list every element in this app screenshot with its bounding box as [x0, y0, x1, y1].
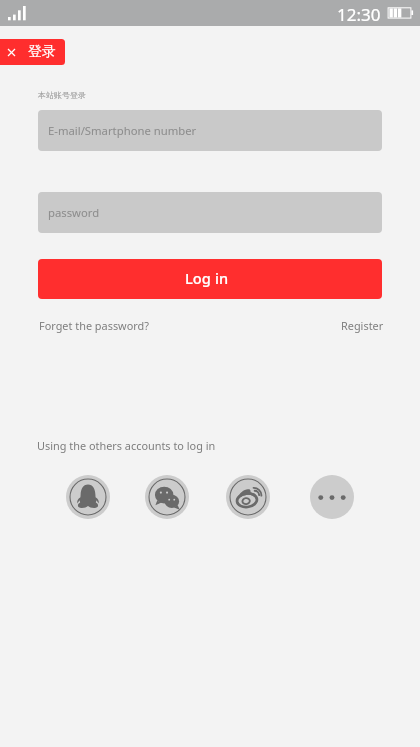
staticText: Log — [185, 268, 211, 288]
button[interactable]: E-mail/Smartphone number — [38, 110, 382, 151]
button[interactable]: WeChat login — [145, 475, 189, 519]
staticText: E-mail/Smartphone number — [48, 123, 197, 138]
button[interactable]: 登录 — [0, 39, 65, 65]
button[interactable]: Register — [341, 318, 384, 333]
button[interactable]: password — [38, 192, 382, 233]
staticText: 登录 — [28, 43, 56, 61]
staticText: 本站账号登录 — [38, 90, 86, 100]
button[interactable]: Weibo login — [226, 475, 270, 519]
staticText: Using the others accounts to log in — [37, 438, 216, 453]
button[interactable]: QQ login — [66, 475, 110, 519]
button[interactable]: Log — [38, 259, 382, 299]
button[interactable]: More login options — [310, 475, 354, 519]
staticText: in — [215, 268, 229, 288]
staticText: password — [48, 205, 100, 220]
staticText: 12:30 — [337, 3, 381, 26]
button[interactable]: Forget the password? — [39, 318, 149, 333]
